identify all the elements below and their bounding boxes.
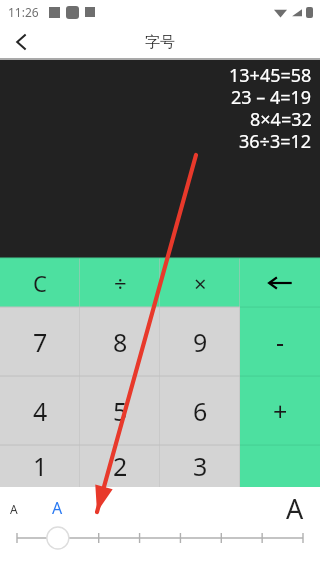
staticText: + (273, 394, 288, 428)
button[interactable]: C (0, 258, 80, 307)
other: Backspace (267, 270, 293, 296)
button[interactable]: 2 (80, 445, 160, 487)
button[interactable]: 4 (0, 376, 80, 445)
staticText: 6 (193, 394, 208, 428)
button[interactable]: ÷ (80, 258, 160, 307)
staticText: 23 – 4=19 (231, 85, 312, 107)
button[interactable]: - (240, 307, 320, 376)
staticText: - (276, 325, 285, 359)
button[interactable]: 1 (0, 445, 80, 487)
button[interactable]: 8 (80, 307, 160, 376)
staticText: 8 (113, 325, 128, 359)
button[interactable]: Back (0, 24, 44, 60)
staticText: 3 (193, 449, 208, 483)
staticText: A (286, 490, 304, 527)
button[interactable]: 5 (80, 376, 160, 445)
staticText: ÷ (114, 268, 127, 298)
staticText: 2 (113, 449, 128, 483)
button[interactable]: Font size slider (0, 487, 320, 568)
button[interactable]: 6 (160, 376, 240, 445)
staticText: 36÷3=12 (239, 129, 312, 151)
button[interactable]: 3 (160, 445, 240, 487)
staticText: 5 (113, 394, 128, 428)
staticText: 8×4=32 (250, 107, 312, 129)
button[interactable]: 9 (160, 307, 240, 376)
staticText: 4 (33, 394, 48, 428)
staticText: 7 (33, 325, 48, 359)
button[interactable]: × (160, 258, 240, 307)
staticText: × (194, 268, 207, 298)
staticText: A (52, 497, 63, 519)
staticText: 13+45=58 (229, 63, 312, 85)
button[interactable]: + (240, 376, 320, 445)
staticText: 1 (33, 449, 48, 483)
staticText: 11:26 (8, 4, 39, 20)
staticText: C (33, 268, 47, 298)
button[interactable]: Backspace (240, 258, 320, 307)
staticText: 字号 (145, 33, 175, 52)
staticText: A (10, 501, 18, 517)
staticText: 9 (193, 325, 208, 359)
button[interactable]: 7 (0, 307, 80, 376)
